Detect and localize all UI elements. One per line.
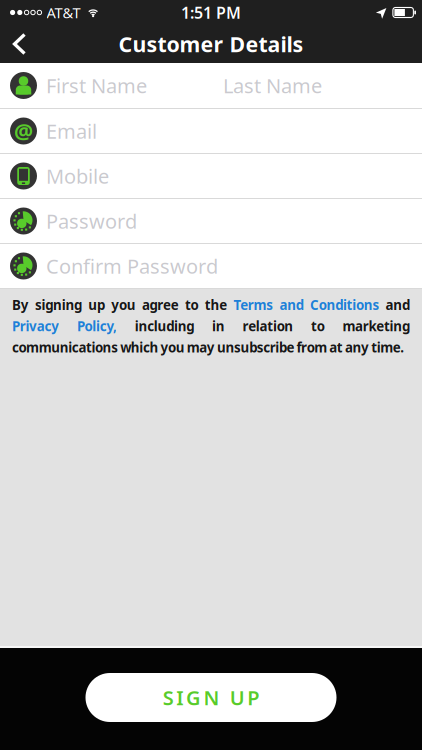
staticText: Confirm Password [46, 253, 218, 279]
staticText: you [111, 296, 136, 314]
staticText: 1:51 PM [181, 2, 241, 23]
staticText: Last Name [223, 72, 322, 99]
staticText: up [88, 296, 105, 314]
button[interactable]: Policy, [77, 317, 117, 335]
button[interactable]: Conditions [310, 296, 379, 314]
staticText: marketing [342, 317, 410, 335]
staticText: AT&T [47, 3, 81, 22]
staticText: Terms [233, 296, 273, 314]
staticText: Customer Details [118, 30, 303, 58]
staticText: communications which you may unsubscribe… [12, 338, 404, 356]
staticText: and [279, 296, 304, 314]
staticText: signing [35, 296, 82, 314]
staticText: @ [14, 117, 33, 145]
staticText: to [185, 296, 199, 314]
staticText: By [12, 296, 29, 314]
staticText: including [135, 317, 194, 335]
staticText: Policy, [77, 317, 117, 335]
button[interactable]: SIGN UP [85, 673, 336, 722]
staticText: in [212, 317, 225, 335]
button[interactable]: Terms [233, 296, 273, 314]
staticText: First Name [46, 72, 147, 99]
staticText: and [386, 296, 410, 314]
button[interactable]: Privacy [12, 317, 59, 335]
staticText: the [205, 296, 227, 314]
button[interactable]: Password [0, 199, 422, 244]
staticText: Privacy [12, 317, 59, 335]
button[interactable]: and [279, 296, 304, 314]
staticText: SIGN UP [163, 684, 259, 711]
button[interactable]: First Name [0, 63, 422, 109]
staticText: Mobile [46, 163, 109, 189]
staticText: agree [142, 296, 179, 314]
staticText: Password [46, 208, 137, 234]
staticText: to [311, 317, 325, 335]
button[interactable]: Mobile [0, 154, 422, 199]
staticText: Conditions [310, 296, 379, 314]
button[interactable]: @ [0, 109, 422, 154]
button[interactable] [0, 33, 37, 55]
staticText: Email [46, 118, 97, 144]
staticText: relation [242, 317, 293, 335]
button[interactable]: Confirm Password [0, 244, 422, 289]
